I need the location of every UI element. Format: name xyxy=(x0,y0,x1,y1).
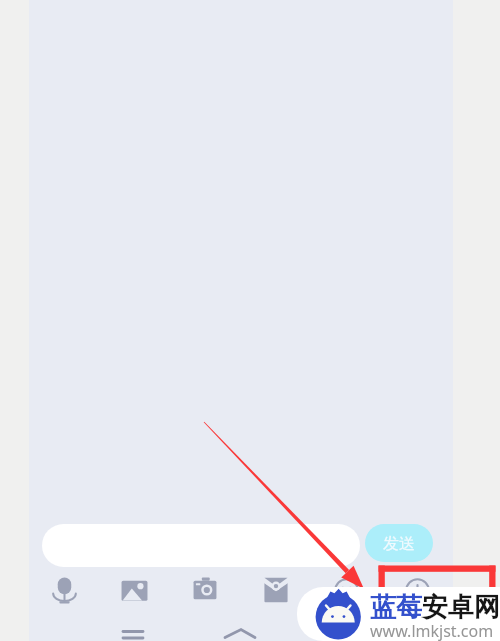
button[interactable]: 发送 xyxy=(365,524,433,562)
staticText: 安卓网 xyxy=(422,591,500,624)
button[interactable]: Camera xyxy=(169,570,240,610)
button[interactable]: Red packet xyxy=(240,570,311,610)
button[interactable]: Voice message xyxy=(29,570,99,610)
staticText: 蓝莓 xyxy=(370,591,422,624)
button[interactable]: More xyxy=(382,570,453,610)
staticText: 发送 xyxy=(383,534,415,554)
staticText: www.lmkjst.com xyxy=(370,620,494,641)
button[interactable]: Photo xyxy=(99,570,169,610)
button[interactable] xyxy=(42,524,360,567)
button[interactable]: Emoji xyxy=(311,570,382,610)
